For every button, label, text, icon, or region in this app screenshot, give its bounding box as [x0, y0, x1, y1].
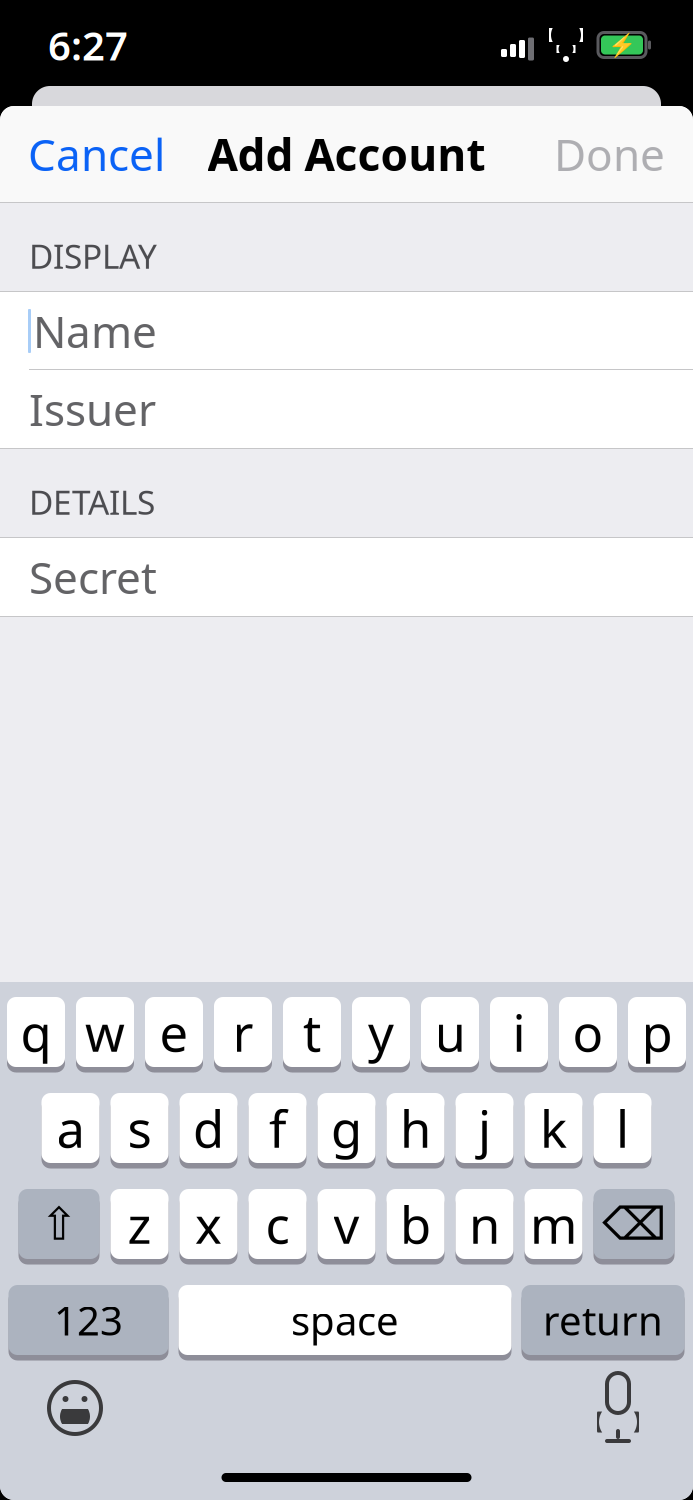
staticText: space — [291, 1293, 399, 1346]
button[interactable]: w — [76, 997, 134, 1070]
staticText: c — [265, 1190, 289, 1258]
button[interactable]: v — [317, 1189, 375, 1262]
staticText: l — [616, 1094, 629, 1162]
button[interactable]: f — [248, 1093, 306, 1166]
staticText: s — [127, 1094, 151, 1162]
button[interactable]: b — [386, 1189, 444, 1262]
staticText: m — [530, 1190, 577, 1258]
staticText: Done — [554, 125, 665, 183]
staticText: v — [333, 1190, 359, 1258]
button[interactable]: o — [559, 997, 617, 1070]
staticText: e — [159, 998, 188, 1066]
button[interactable]: z — [110, 1189, 168, 1262]
button[interactable]: Emoji keyboard — [30, 1368, 120, 1448]
button[interactable]: Shift — [18, 1189, 99, 1262]
staticText: r — [232, 998, 253, 1066]
staticText: 6:27 — [48, 18, 128, 71]
button[interactable]: 123 — [8, 1285, 168, 1358]
staticText: k — [540, 1094, 567, 1162]
staticText: u — [434, 998, 465, 1066]
staticText: h — [400, 1094, 431, 1162]
staticText: b — [400, 1190, 431, 1258]
staticText: w — [85, 998, 125, 1066]
staticText: DETAILS — [29, 480, 155, 524]
button[interactable]: s — [110, 1093, 168, 1166]
button[interactable]: h — [386, 1093, 444, 1166]
button[interactable]: Secret — [0, 538, 693, 616]
button[interactable]: i — [490, 997, 548, 1070]
staticText: d — [193, 1094, 224, 1162]
button[interactable]: Issuer — [0, 370, 693, 448]
button[interactable]: n — [455, 1189, 513, 1262]
staticText: Add Account — [207, 125, 485, 183]
staticText: f — [269, 1094, 286, 1162]
button[interactable]: Done — [526, 106, 693, 202]
button[interactable]: p — [628, 997, 686, 1070]
button[interactable]: c — [248, 1189, 306, 1262]
button[interactable]: q — [7, 997, 65, 1070]
button[interactable]: m — [524, 1189, 582, 1262]
button[interactable]: k — [524, 1093, 582, 1166]
staticText: i — [512, 998, 525, 1066]
staticText: g — [331, 1094, 362, 1162]
staticText: Name — [33, 302, 157, 360]
button[interactable]: Cancel — [0, 106, 193, 202]
staticText: 123 — [54, 1293, 123, 1346]
button[interactable]: Name — [0, 292, 693, 370]
staticText: ⚡ — [608, 32, 636, 58]
button[interactable]: g — [317, 1093, 375, 1166]
button[interactable]: d — [179, 1093, 237, 1166]
staticText: z — [127, 1190, 151, 1258]
staticText: a — [56, 1094, 84, 1162]
staticText: return — [543, 1293, 663, 1346]
staticText: DISPLAY — [29, 234, 157, 278]
staticText: Issuer — [29, 380, 156, 438]
button[interactable]: y — [352, 997, 410, 1070]
staticText: ⇧ — [40, 1198, 78, 1250]
staticText: j — [478, 1094, 491, 1162]
button[interactable]: r — [214, 997, 272, 1070]
staticText: n — [469, 1190, 500, 1258]
staticText: ⌫ — [602, 1198, 666, 1250]
staticText: x — [195, 1190, 222, 1258]
staticText: q — [20, 998, 51, 1066]
button[interactable]: l — [593, 1093, 651, 1166]
staticText: y — [368, 998, 394, 1066]
staticText: p — [641, 998, 672, 1066]
button[interactable]: Dictation — [573, 1368, 663, 1448]
button[interactable]: Delete — [593, 1189, 674, 1262]
staticText: o — [572, 998, 603, 1066]
button[interactable]: space — [178, 1285, 511, 1358]
button[interactable]: t — [283, 997, 341, 1070]
staticText: Secret — [29, 548, 157, 606]
button[interactable]: j — [455, 1093, 513, 1166]
button[interactable]: return — [521, 1285, 684, 1358]
staticText: Cancel — [28, 125, 165, 183]
button[interactable]: u — [421, 997, 479, 1070]
button[interactable]: a — [41, 1093, 99, 1166]
button[interactable]: e — [145, 997, 203, 1070]
button[interactable]: x — [179, 1189, 237, 1262]
staticText: t — [303, 998, 321, 1066]
